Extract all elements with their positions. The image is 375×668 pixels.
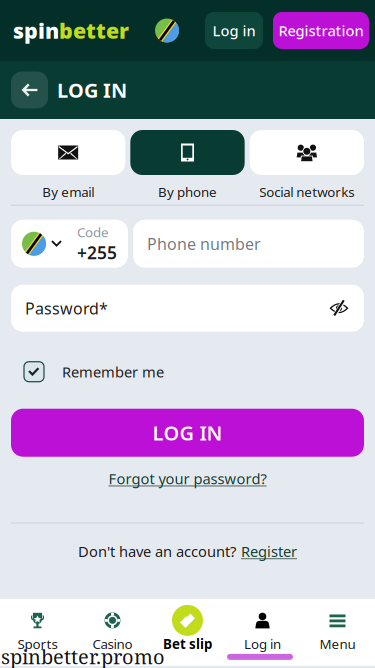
button[interactable]: By phone <box>130 130 245 201</box>
button[interactable]: Casino <box>75 612 150 652</box>
staticText: Register <box>241 541 297 561</box>
staticText: Menu <box>319 635 355 653</box>
button[interactable]: By email <box>11 130 125 201</box>
button[interactable]: LOG IN <box>11 409 364 457</box>
staticText: Phone number <box>147 233 261 254</box>
button[interactable]: Social networks <box>250 130 364 201</box>
staticText: By phone <box>158 183 217 201</box>
staticText: spinbetter.promo <box>1 643 165 668</box>
button[interactable]: Register <box>241 541 297 561</box>
button[interactable]: Registration <box>273 12 369 49</box>
button[interactable]: Code <box>11 220 128 268</box>
staticText: Log in <box>244 635 281 653</box>
staticText: +255 <box>77 241 117 264</box>
staticText: LOG IN <box>57 77 127 103</box>
staticText: Log in <box>212 21 255 40</box>
button[interactable]: Log in <box>205 12 263 49</box>
staticText: Registration <box>278 21 363 40</box>
button[interactable]: Forgot your password? <box>11 469 364 488</box>
staticText: better <box>59 16 129 45</box>
staticText: Code <box>77 223 109 241</box>
staticText: Forgot your password? <box>108 469 266 488</box>
staticText: Password* <box>25 298 108 319</box>
staticText: By email <box>42 183 94 201</box>
button[interactable]: Show password <box>323 292 355 324</box>
button[interactable]: Back <box>11 71 48 108</box>
button[interactable]: Log in <box>225 612 300 652</box>
button[interactable]: Remember me <box>24 362 164 382</box>
staticText: Bet slip <box>163 635 212 653</box>
staticText: Remember me <box>62 362 164 381</box>
button[interactable]: Sports <box>0 612 75 652</box>
button[interactable]: Bet slip <box>150 612 225 652</box>
staticText: Sports <box>17 635 57 653</box>
staticText: Don't have an account? <box>78 541 236 561</box>
staticText: LOG IN <box>152 419 222 446</box>
staticText: Social networks <box>259 183 354 201</box>
button[interactable]: Menu <box>300 612 375 652</box>
staticText: spin <box>13 16 59 45</box>
staticText: Casino <box>92 635 132 653</box>
